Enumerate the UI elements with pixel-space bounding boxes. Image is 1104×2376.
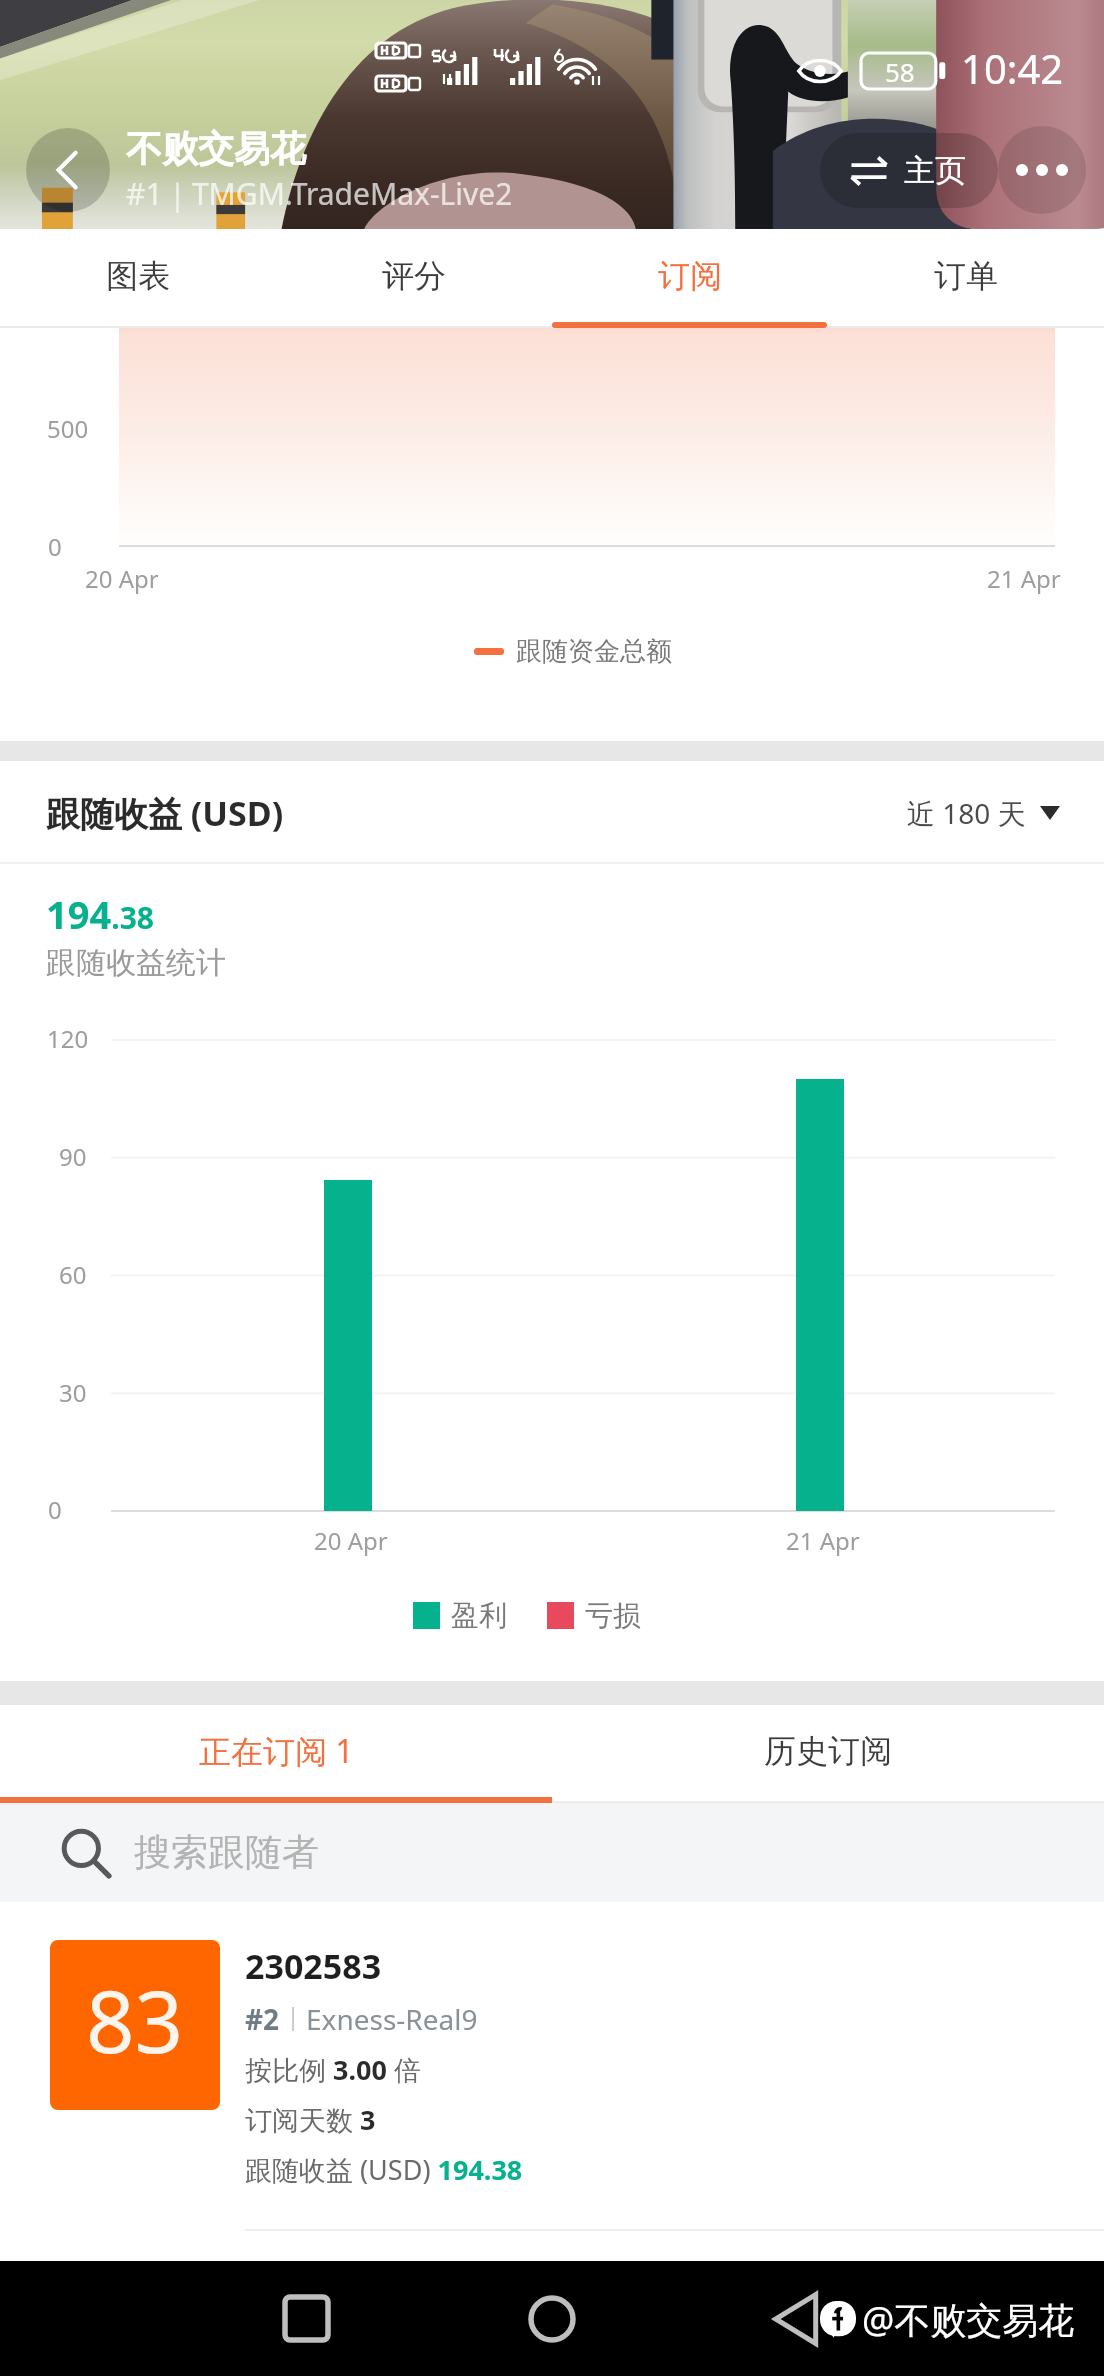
staticText: 按比例 3.00 倍: [245, 2051, 421, 2088]
staticText: 跟随收益统计: [46, 944, 226, 982]
staticText: 订单: [934, 256, 998, 296]
button[interactable]: Recents: [256, 2261, 356, 2376]
staticText: #1｜TMGM.TradeMax-Live2: [126, 173, 513, 214]
staticText: 194.38: [46, 888, 154, 940]
staticText: 搜索跟随者: [134, 1829, 319, 1876]
staticText: 2302583: [245, 1943, 382, 1989]
staticText: 60: [59, 1258, 87, 1291]
button[interactable]: Back: [772, 2293, 818, 2345]
staticText: 评分: [382, 256, 446, 296]
button[interactable]: More options: [998, 126, 1086, 214]
staticText: 主页: [904, 151, 966, 190]
staticText: 跟随收益 (USD) 194.38: [245, 2151, 523, 2188]
staticText: 21 Apr: [987, 562, 1061, 595]
button[interactable]: 历史订阅: [552, 1705, 1104, 1797]
staticText: @不败交易花: [862, 2295, 1075, 2344]
staticText: 83: [86, 1962, 184, 2078]
staticText: 10:42: [961, 41, 1064, 95]
staticText: 20 Apr: [85, 562, 159, 595]
staticText: 21 Apr: [786, 1524, 860, 1557]
staticText: 亏损: [585, 1598, 641, 1633]
button[interactable]: 正在订阅 1: [0, 1705, 552, 1797]
staticText: 500: [47, 412, 89, 445]
staticText: 订阅: [658, 256, 722, 296]
staticText: 正在订阅 1: [199, 1729, 354, 1773]
button[interactable]: 图表: [0, 229, 276, 322]
staticText: 30: [59, 1376, 87, 1409]
staticText: 跟随收益 (USD): [46, 790, 284, 836]
button[interactable]: 83: [0, 1902, 1104, 2261]
button[interactable]: 搜索跟随者: [0, 1803, 1104, 1902]
staticText: 120: [47, 1022, 89, 1055]
button[interactable]: 订单: [828, 229, 1104, 322]
staticText: 图表: [106, 256, 170, 296]
button[interactable]: 近 180 天: [907, 794, 1060, 832]
staticText: 20 Apr: [314, 1524, 388, 1557]
staticText: 58: [885, 54, 915, 89]
button[interactable]: Home: [502, 2261, 602, 2376]
staticText: 跟随资金总额: [516, 635, 672, 668]
staticText: 0: [48, 530, 62, 563]
button[interactable]: 评分: [276, 229, 552, 322]
staticText: 90: [59, 1140, 87, 1173]
staticText: 历史订阅: [764, 1731, 892, 1771]
staticText: 订阅天数 3: [245, 2101, 376, 2138]
button[interactable]: Back: [26, 128, 110, 212]
staticText: 不败交易花: [126, 126, 306, 171]
staticText: Exness-Real9: [306, 2000, 478, 2038]
staticText: #2: [245, 2000, 280, 2038]
staticText: 盈利: [451, 1598, 507, 1633]
button[interactable]: 订阅: [552, 229, 828, 322]
staticText: 近 180 天: [907, 794, 1026, 832]
button[interactable]: 主页: [820, 133, 998, 208]
staticText: 0: [48, 1493, 62, 1526]
